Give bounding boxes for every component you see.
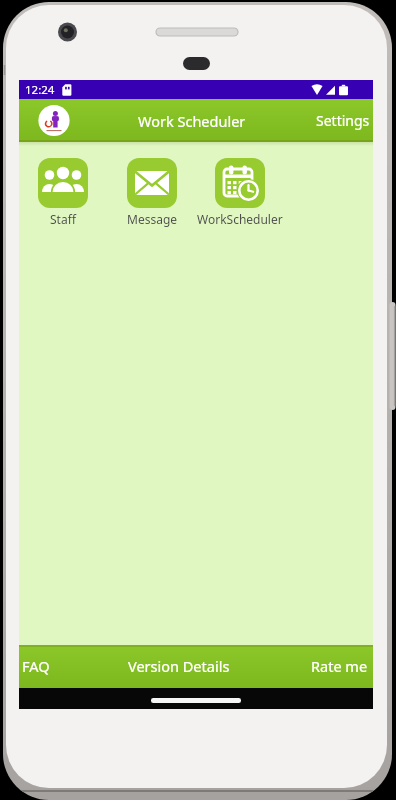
- staticText: Work Scheduler: [138, 111, 246, 131]
- staticText: Version Details: [128, 656, 230, 676]
- staticText: 12:24: [25, 82, 55, 98]
- button[interactable]: Rate me: [306, 648, 373, 684]
- button[interactable]: Message: [108, 158, 196, 227]
- button[interactable]: FAQ: [19, 648, 55, 684]
- button[interactable]: Version Details: [123, 648, 235, 684]
- staticText: Message: [127, 211, 178, 227]
- staticText: Staff: [50, 211, 76, 227]
- button[interactable]: [38, 104, 70, 136]
- staticText: Settings: [316, 111, 370, 130]
- staticText: Rate me: [311, 656, 368, 676]
- button[interactable]: Staff: [19, 158, 107, 227]
- staticText: FAQ: [22, 656, 50, 676]
- button[interactable]: Settings: [313, 105, 373, 136]
- button[interactable]: WorkScheduler: [196, 158, 284, 227]
- staticText: WorkScheduler: [197, 211, 283, 227]
